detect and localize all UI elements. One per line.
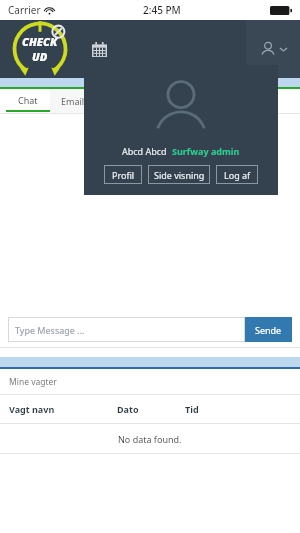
staticText: Mine vagter: [9, 376, 57, 388]
button[interactable]: Account menu: [246, 20, 300, 78]
staticText: Sende: [255, 324, 282, 336]
staticText: Profil: [112, 169, 135, 181]
staticText: Dato: [117, 403, 139, 415]
button[interactable]: Chat: [6, 89, 50, 113]
staticText: 2:45 PM: [143, 3, 181, 17]
staticText: Abcd Abcd: [122, 145, 167, 157]
staticText: Type Message ...: [15, 324, 85, 336]
button[interactable]: Type Message ...: [8, 317, 245, 342]
staticText: Tid: [185, 403, 199, 415]
staticText: UD: [32, 49, 48, 64]
button[interactable]: Calendar: [85, 35, 113, 63]
button[interactable]: Side visning: [148, 165, 210, 184]
staticText: Vagt navn: [9, 403, 55, 415]
staticText: Email: [61, 95, 85, 107]
staticText: Side visning: [154, 169, 205, 181]
staticText: Surfway admin: [172, 145, 240, 157]
staticText: Log af: [224, 169, 251, 181]
staticText: CHECK: [22, 34, 58, 49]
staticText: No data found.: [118, 433, 182, 445]
button[interactable]: Sende: [245, 317, 292, 342]
staticText: Chat: [18, 94, 38, 106]
button[interactable]: Log af: [216, 165, 258, 184]
button[interactable]: Email: [50, 89, 96, 113]
staticText: Carrier: [8, 3, 41, 17]
button[interactable]: Profil: [104, 165, 142, 184]
